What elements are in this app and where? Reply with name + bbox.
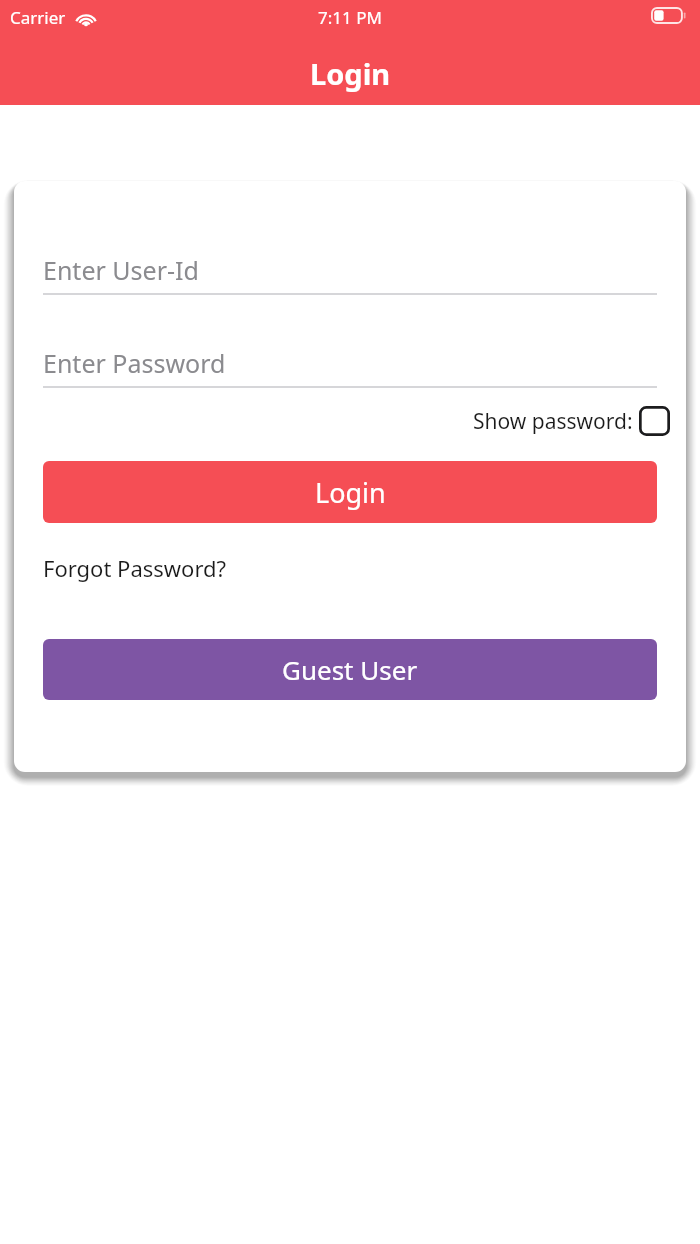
staticText: Login bbox=[310, 54, 391, 93]
staticText: Show password: bbox=[473, 407, 633, 436]
staticText: Carrier bbox=[10, 6, 66, 29]
staticText: Enter Password bbox=[43, 346, 226, 380]
staticText: Enter User-Id bbox=[43, 253, 199, 287]
other: Show password checkbox bbox=[639, 406, 670, 436]
button[interactable]: Enter User-Id bbox=[43, 253, 657, 295]
button[interactable]: Guest User bbox=[43, 639, 657, 700]
other: Battery bbox=[651, 7, 686, 24]
button[interactable]: Enter Password bbox=[43, 346, 657, 388]
button[interactable]: Forgot Password? bbox=[43, 550, 227, 586]
staticText: Forgot Password? bbox=[43, 553, 227, 583]
button[interactable]: Login bbox=[43, 461, 657, 523]
staticText: Guest User bbox=[282, 652, 418, 687]
other: Wi-Fi bbox=[75, 10, 97, 26]
staticText: 7:11 PM bbox=[318, 6, 382, 29]
staticText: Login bbox=[315, 474, 386, 511]
button[interactable]: Show password: bbox=[470, 403, 673, 439]
